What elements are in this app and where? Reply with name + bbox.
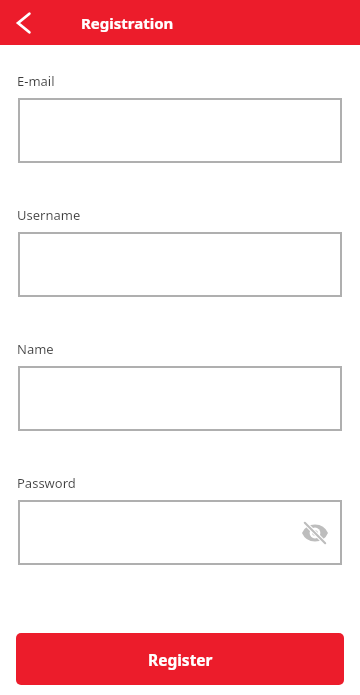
button[interactable]: [18, 232, 342, 297]
staticText: Registration: [81, 13, 174, 33]
staticText: Username: [17, 206, 81, 224]
button[interactable]: Show password: [18, 500, 342, 565]
button[interactable]: Show password: [301, 519, 329, 547]
staticText: Register: [148, 649, 213, 670]
staticText: Password: [17, 474, 76, 492]
staticText: E-mail: [17, 72, 55, 90]
button[interactable]: Register: [16, 633, 344, 685]
button[interactable]: [18, 366, 342, 431]
button[interactable]: [18, 98, 342, 163]
button[interactable]: Back: [0, 0, 45, 45]
staticText: Name: [17, 340, 54, 358]
